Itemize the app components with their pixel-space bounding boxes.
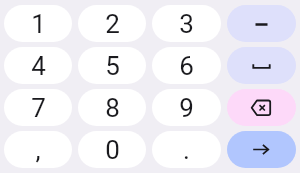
button[interactable]: 0 — [78, 131, 146, 168]
staticText: , — [35, 135, 41, 165]
button[interactable]: 2 — [78, 5, 146, 42]
button[interactable]: Backspace — [227, 89, 296, 126]
button[interactable]: 3 — [152, 5, 221, 42]
button[interactable]: 7 — [4, 89, 72, 126]
staticText: 5 — [105, 51, 120, 81]
button[interactable]: 4 — [4, 47, 72, 84]
staticText: 3 — [179, 9, 194, 39]
button[interactable]: Enter — [227, 131, 296, 168]
staticText: . — [183, 135, 190, 165]
button[interactable]: 6 — [152, 47, 221, 84]
staticText: 8 — [105, 93, 120, 123]
staticText: 6 — [179, 51, 194, 81]
button[interactable]: 1 — [4, 5, 72, 42]
staticText: 2 — [105, 9, 120, 39]
staticText: 1 — [31, 9, 46, 39]
button[interactable]: , — [4, 131, 72, 168]
staticText: 7 — [31, 93, 46, 123]
staticText: 9 — [179, 93, 194, 123]
staticText: 0 — [105, 135, 120, 165]
button[interactable]: 9 — [152, 89, 221, 126]
button[interactable]: Minus — [227, 5, 296, 42]
button[interactable]: . — [152, 131, 221, 168]
button[interactable]: 5 — [78, 47, 146, 84]
staticText: 4 — [31, 51, 46, 81]
button[interactable]: 8 — [78, 89, 146, 126]
button[interactable]: Space — [227, 47, 296, 84]
